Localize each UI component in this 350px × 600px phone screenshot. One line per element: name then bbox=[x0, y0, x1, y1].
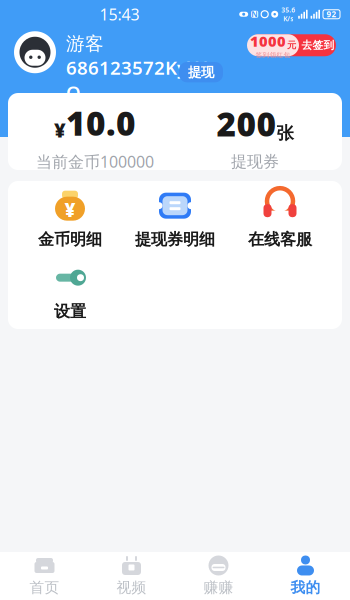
staticText: 15:43 bbox=[100, 4, 140, 25]
staticText: ¥ bbox=[54, 116, 66, 143]
button[interactable]: 首页 bbox=[1, 553, 88, 599]
button[interactable]: 设置 bbox=[17, 255, 122, 327]
staticText: 元 bbox=[287, 39, 296, 51]
staticText: N bbox=[251, 9, 258, 19]
staticText: 1000 bbox=[250, 31, 286, 51]
staticText: 签到领红包 bbox=[255, 51, 290, 59]
staticText: 视频 bbox=[116, 578, 146, 596]
button[interactable]: 点击登录 bbox=[66, 109, 148, 133]
staticText: 10.0 bbox=[66, 101, 136, 145]
staticText: 我的 bbox=[290, 578, 320, 596]
staticText: K/s bbox=[283, 14, 293, 23]
button[interactable]: 赚赚 bbox=[175, 553, 262, 599]
staticText: 首页 bbox=[29, 578, 59, 596]
staticText: 35.6 bbox=[281, 5, 295, 14]
staticText: 赚赚 bbox=[203, 578, 233, 596]
button[interactable]: 1000 bbox=[248, 34, 336, 56]
staticText: 张 bbox=[276, 122, 293, 144]
staticText: 金币明细 bbox=[38, 230, 102, 249]
button[interactable]: 视频 bbox=[88, 553, 175, 599]
button[interactable]: Avatar bbox=[14, 31, 56, 73]
staticText: 提现券 bbox=[231, 152, 279, 171]
button[interactable]: 提现券明细 bbox=[122, 183, 227, 255]
staticText: 设置 bbox=[54, 302, 86, 321]
staticText: 200 bbox=[216, 101, 276, 146]
staticText: 当前金币100000 bbox=[36, 151, 154, 172]
button[interactable]: ¥ bbox=[17, 183, 122, 255]
staticText: 去签到 bbox=[301, 39, 334, 52]
staticText: 提现 bbox=[188, 64, 214, 80]
staticText: 游客686123572KyY4Q bbox=[66, 32, 209, 105]
button[interactable]: 在线客服 bbox=[227, 183, 332, 255]
staticText: 在线客服 bbox=[248, 230, 312, 249]
button[interactable]: 提现 bbox=[179, 62, 223, 82]
staticText: 点击登录 bbox=[77, 112, 137, 130]
button[interactable]: 我的 bbox=[262, 553, 349, 599]
staticText: 92 bbox=[326, 9, 336, 19]
staticText: ¥ bbox=[64, 197, 75, 222]
staticText: 提现券明细 bbox=[135, 230, 215, 249]
